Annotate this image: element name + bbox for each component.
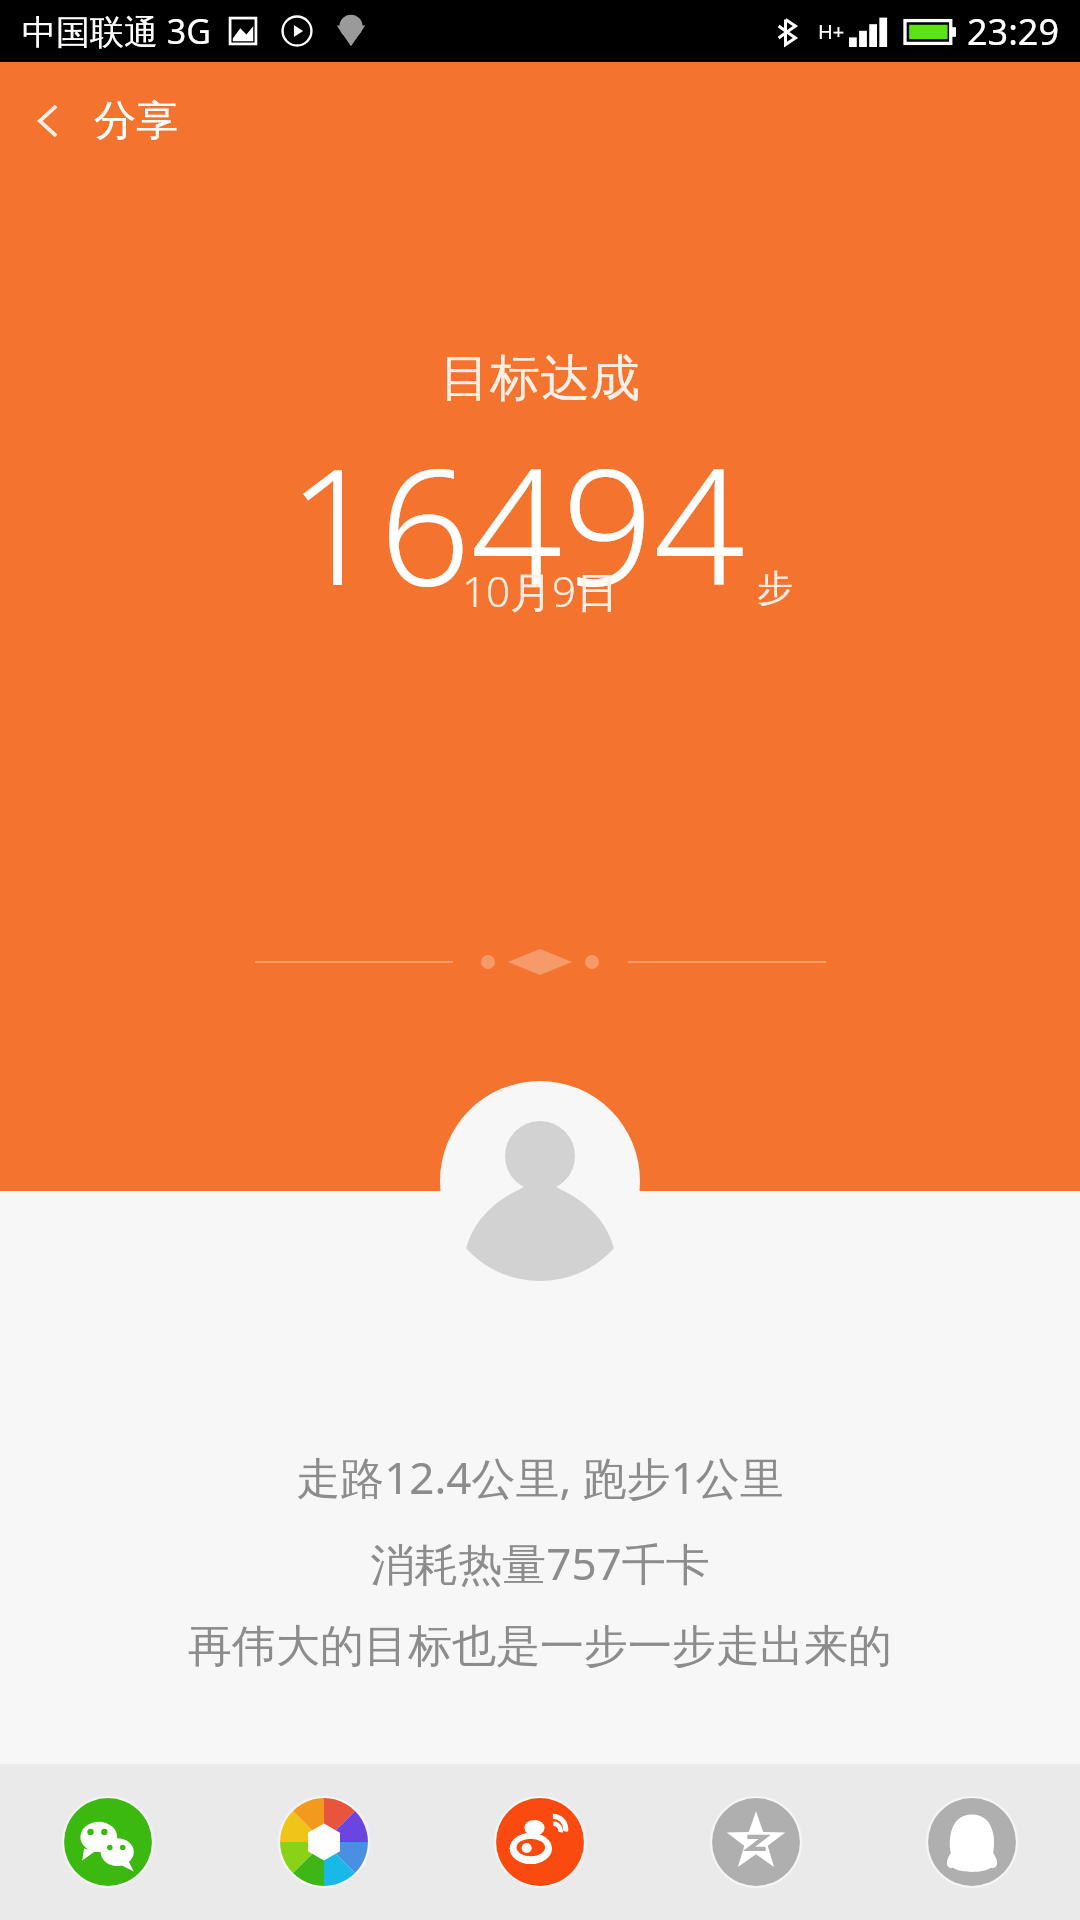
- button[interactable]: Back: [14, 85, 86, 157]
- staticText: 中国联通 3G: [22, 8, 212, 54]
- staticText: 目标达成: [440, 347, 640, 410]
- staticText: 走路12.4公里, 跑步1公里: [296, 1447, 784, 1507]
- staticText: 步: [757, 565, 793, 610]
- staticText: 23:29: [967, 7, 1060, 56]
- button[interactable]: Moments: [272, 1790, 376, 1894]
- button[interactable]: QZone: [704, 1790, 808, 1894]
- button[interactable]: Profile avatar: [440, 1081, 640, 1281]
- button[interactable]: Weibo: [488, 1790, 592, 1894]
- staticText: 再伟大的目标也是一步一步走出来的: [188, 1619, 892, 1674]
- staticText: 消耗热量757千卡: [370, 1533, 710, 1593]
- staticText: 分享: [94, 95, 178, 148]
- staticText: H+: [818, 18, 845, 45]
- staticText: 16494: [288, 414, 745, 632]
- button[interactable]: QQ: [920, 1790, 1024, 1894]
- staticText: 10月9日: [462, 562, 618, 619]
- button[interactable]: WeChat: [56, 1790, 160, 1894]
